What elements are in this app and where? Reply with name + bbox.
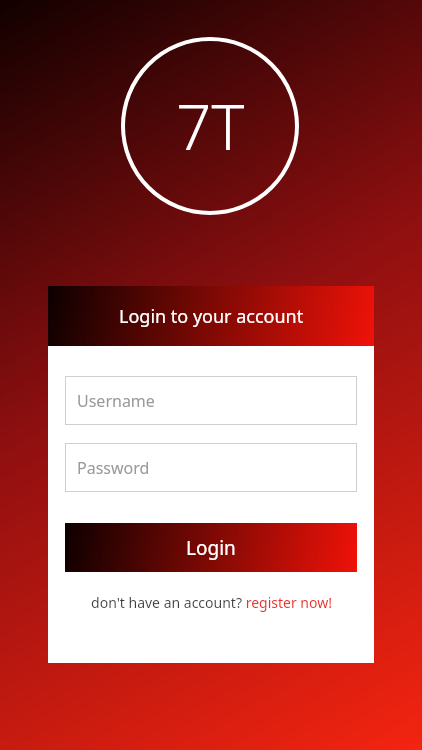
button[interactable]: Username bbox=[65, 376, 357, 425]
staticText: Login to your account bbox=[119, 304, 304, 329]
staticText: Login bbox=[186, 535, 236, 561]
button[interactable]: Password bbox=[65, 443, 357, 492]
button[interactable]: don't have an account? register now! bbox=[48, 593, 374, 612]
button[interactable]: Login bbox=[65, 523, 357, 572]
staticText: Username bbox=[77, 390, 155, 412]
staticText: Password bbox=[77, 457, 150, 479]
staticText: don't have an account? register now! bbox=[91, 593, 332, 612]
staticText: 7T bbox=[176, 84, 245, 168]
